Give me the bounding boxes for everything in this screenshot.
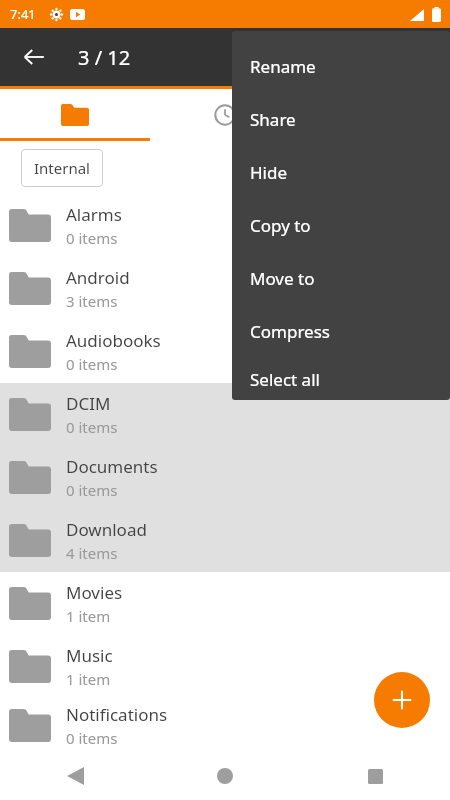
button[interactable]: Documents <box>0 446 450 509</box>
staticText: Audiobooks <box>66 329 161 352</box>
button[interactable]: Audiobooks <box>0 320 450 383</box>
staticText: Music <box>66 644 113 667</box>
button[interactable]: Notifications <box>0 698 450 752</box>
staticText: 4 items <box>66 543 118 563</box>
staticText: Documents <box>66 455 158 478</box>
staticText: 0 items <box>66 417 118 437</box>
button[interactable]: Home <box>150 752 300 800</box>
button[interactable]: Recents <box>300 752 450 800</box>
staticText: Android <box>66 266 130 289</box>
staticText: 0 items <box>66 728 118 748</box>
staticText: Select all <box>250 368 320 391</box>
staticText: Rename <box>250 55 316 78</box>
button[interactable]: Copy to <box>232 199 450 252</box>
button[interactable]: Alarms <box>0 194 450 257</box>
staticText: Compress <box>250 320 330 343</box>
staticText: Move to <box>250 267 315 290</box>
button[interactable]: DCIM <box>0 383 450 446</box>
staticText: 1 item <box>66 669 111 689</box>
staticText: Hide <box>250 161 288 184</box>
button[interactable]: Files <box>0 89 150 141</box>
staticText: Share <box>250 108 296 131</box>
staticText: 3 / 12 <box>78 44 131 71</box>
button[interactable]: Movies <box>0 572 450 635</box>
staticText: 7:41 <box>10 5 36 23</box>
staticText: 0 items <box>66 354 118 374</box>
button[interactable]: Compress <box>232 305 450 358</box>
button[interactable]: Select all <box>232 358 450 400</box>
staticText: 1 item <box>66 606 111 626</box>
button[interactable]: Android <box>0 257 450 320</box>
button[interactable]: Add <box>374 672 430 728</box>
staticText: Alarms <box>66 203 122 226</box>
staticText: 3 items <box>66 291 118 311</box>
staticText: Internal <box>34 158 90 178</box>
staticText: 0 items <box>66 480 118 500</box>
staticText: Download <box>66 518 147 541</box>
button[interactable]: Rename <box>232 40 450 93</box>
button[interactable]: Download <box>0 509 450 572</box>
button[interactable]: Move to <box>232 252 450 305</box>
button[interactable]: Back <box>12 35 56 79</box>
staticText: Notifications <box>66 703 168 726</box>
button[interactable]: Recents <box>150 89 300 141</box>
staticText: Copy to <box>250 214 311 237</box>
staticText: Movies <box>66 581 123 604</box>
staticText: DCIM <box>66 392 111 415</box>
button[interactable]: Internal <box>21 149 103 187</box>
button[interactable]: Hide <box>232 146 450 199</box>
staticText: 0 items <box>66 228 118 248</box>
button[interactable]: Back <box>0 752 150 800</box>
button[interactable]: Music <box>0 635 450 698</box>
button[interactable]: Share <box>232 93 450 146</box>
